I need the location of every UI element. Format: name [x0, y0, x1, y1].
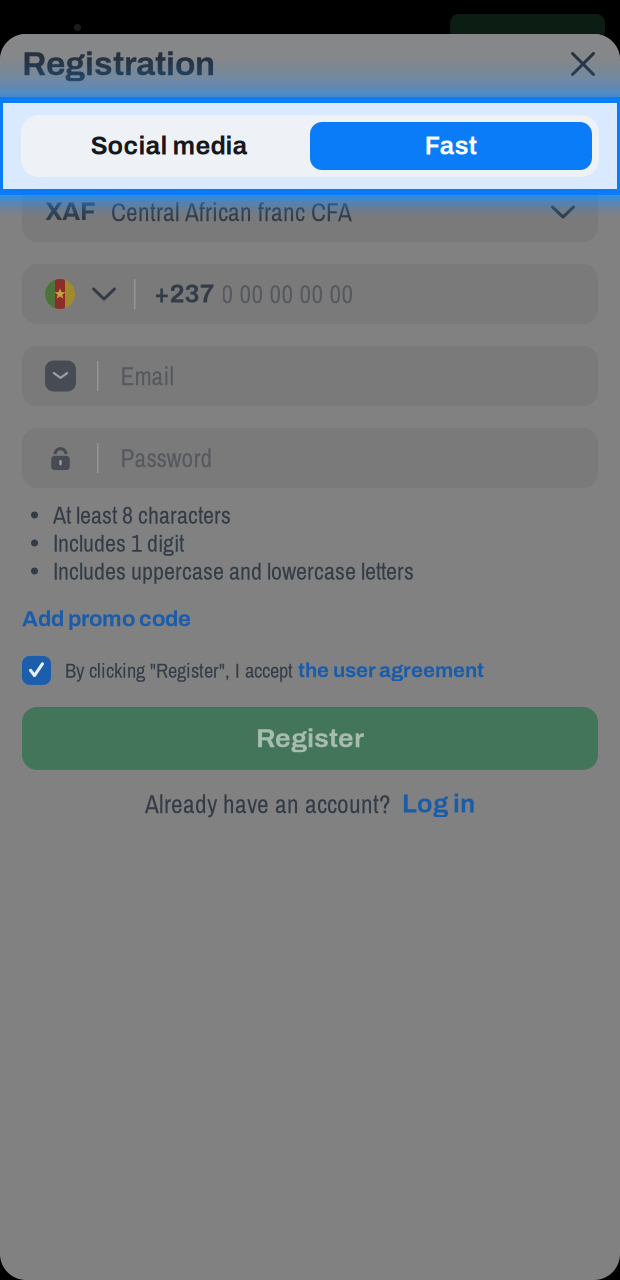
staticText: Password [120, 441, 212, 475]
staticText: +237 [153, 280, 214, 308]
staticText: Central African franc CFA [111, 195, 352, 229]
staticText: Registration [22, 46, 215, 82]
staticText: Includes 1 digit [53, 527, 184, 559]
staticText: Email [120, 359, 174, 393]
staticText: 0 00 00 00 00 [221, 277, 353, 311]
staticText: Add promo code [22, 607, 191, 631]
staticText: the user agreement [298, 659, 484, 681]
staticText: Register [256, 724, 364, 753]
staticText: Fast [424, 132, 477, 160]
staticText: Includes uppercase and lowercase letters [53, 555, 414, 587]
staticText: Social media [90, 132, 247, 160]
staticText: At least 8 characters [53, 499, 231, 531]
staticText: By clicking "Register", I accept [65, 657, 298, 684]
button[interactable]: Log in [402, 790, 475, 818]
button[interactable]: Select country calling code [22, 264, 134, 324]
button[interactable]: Email [0, 346, 620, 406]
button[interactable]: By clicking "Register", I accept [0, 656, 620, 685]
button[interactable]: Close [560, 41, 606, 87]
button[interactable]: Fast [310, 122, 592, 170]
staticText: XAF [45, 198, 96, 226]
button[interactable]: Social media [28, 122, 310, 170]
staticText: Already have an account? [145, 787, 391, 821]
staticText: Log in [402, 790, 475, 818]
button[interactable]: Password [0, 428, 620, 488]
button[interactable]: XAF [0, 182, 620, 242]
button[interactable]: Register [0, 707, 620, 770]
button[interactable]: Add promo code [0, 604, 620, 634]
